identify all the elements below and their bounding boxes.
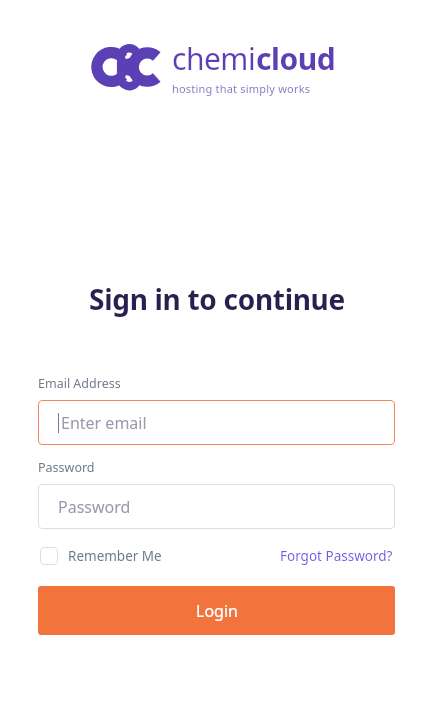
staticText: Remember Me xyxy=(68,547,162,565)
staticText: Email Address xyxy=(38,375,121,392)
button[interactable]: Forgot Password? xyxy=(278,543,395,569)
staticText: Login xyxy=(196,600,238,622)
staticText: Password xyxy=(58,496,131,518)
staticText: Sign in to continue xyxy=(89,280,345,318)
staticText: Enter email xyxy=(61,412,147,434)
button[interactable]: Email Address input xyxy=(38,400,395,445)
button[interactable]: Password input xyxy=(38,484,395,529)
staticText: Forgot Password? xyxy=(280,547,393,565)
button[interactable]: Login xyxy=(38,586,395,635)
staticText: Password xyxy=(38,459,95,476)
staticText: hosting that simply works xyxy=(172,81,311,96)
staticText: chemi xyxy=(172,38,256,79)
staticText: cloud xyxy=(256,38,336,79)
button[interactable]: Remember Me xyxy=(38,543,164,569)
